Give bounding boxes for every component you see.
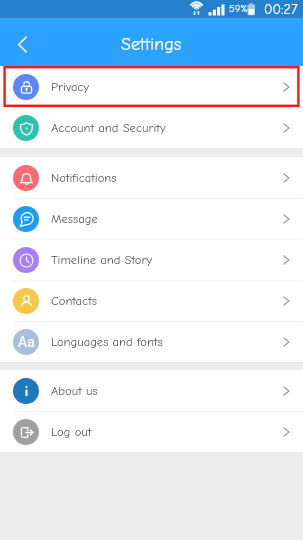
button[interactable]: Aa — [0, 321, 303, 362]
button[interactable]: Contacts — [0, 280, 303, 321]
staticText: Settings — [121, 34, 182, 55]
button[interactable]: Timeline and Story — [0, 239, 303, 280]
button[interactable]: Message — [0, 198, 303, 239]
button[interactable]: Account and Security — [0, 107, 303, 148]
staticText: Contacts — [51, 294, 98, 308]
staticText: Aa — [18, 334, 35, 350]
staticText: About us — [51, 384, 98, 398]
staticText: Account and Security — [51, 121, 166, 135]
staticText: Log out — [51, 425, 92, 439]
staticText: Timeline and Story — [51, 253, 153, 267]
staticText: 00:27 — [264, 1, 298, 17]
staticText: Languages and fonts — [51, 335, 163, 349]
staticText: 59% — [229, 3, 248, 15]
staticText: Notifications — [51, 171, 117, 185]
button[interactable]: About us — [0, 370, 303, 411]
staticText: Message — [51, 212, 98, 226]
button[interactable]: Privacy — [0, 66, 303, 107]
button[interactable]: Back — [0, 20, 45, 65]
button[interactable]: Notifications — [0, 157, 303, 198]
button[interactable]: Log out — [0, 411, 303, 452]
staticText: Privacy — [51, 80, 90, 94]
